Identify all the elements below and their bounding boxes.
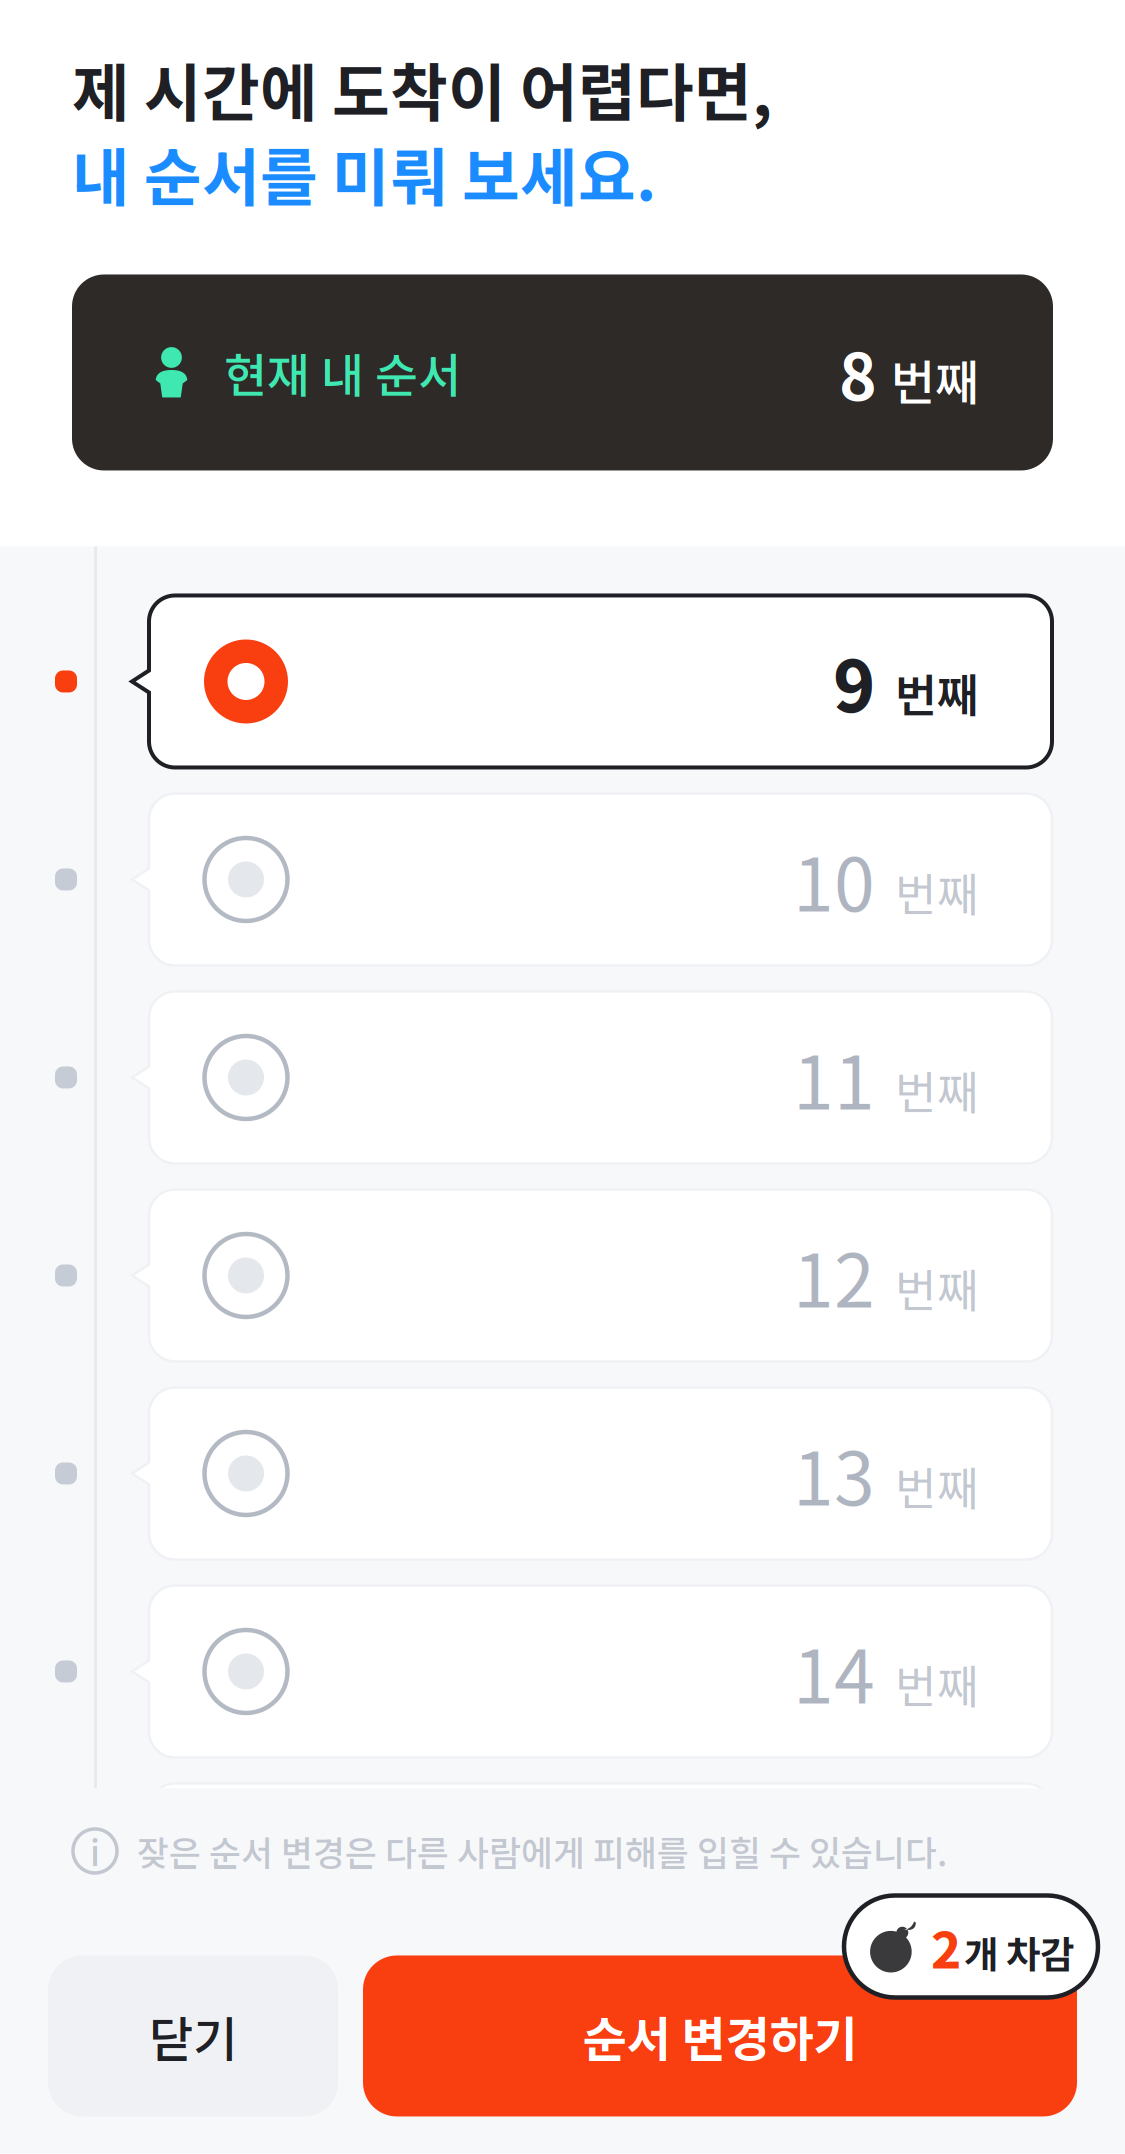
staticText: 번째 — [891, 345, 979, 414]
staticText: 번째 — [895, 1651, 979, 1716]
button[interactable]: 12 — [0, 1189, 1052, 1361]
staticText: 잦은 순서 변경은 다른 사람에게 피해를 입힐 수 있습니다. — [137, 1826, 947, 1876]
staticText: 현재 내 순서 — [224, 339, 461, 406]
staticText: 12 — [793, 1222, 875, 1329]
staticText: 닫기 — [149, 2001, 237, 2071]
staticText: i — [90, 1826, 100, 1876]
staticText: 13 — [793, 1420, 875, 1527]
staticText: 번째 — [895, 1057, 979, 1122]
staticText: 번째 — [895, 1255, 979, 1320]
staticText: 8 — [839, 326, 877, 419]
staticText: 10 — [793, 826, 875, 933]
staticText: 내 순서를 미뤄 보세요. — [72, 128, 656, 218]
button[interactable]: 10 — [0, 793, 1052, 965]
staticText: 개 차감 — [964, 1925, 1074, 1979]
staticText: 번째 — [895, 660, 979, 725]
staticText: 순서 변경하기 — [582, 2001, 857, 2071]
button[interactable]: 13 — [0, 1387, 1052, 1559]
button[interactable]: 11 — [0, 991, 1052, 1163]
button[interactable]: 순서 변경하기 — [363, 1955, 1077, 2116]
staticText: 14 — [793, 1618, 875, 1725]
staticText: 9 — [833, 630, 875, 733]
staticText: 15 — [793, 1816, 875, 1923]
staticText: 제 시간에 도착이 어렵다면, — [72, 43, 772, 134]
button[interactable]: 15 — [0, 1783, 1052, 1955]
staticText: 번째 — [895, 859, 979, 924]
button[interactable]: 9 — [0, 595, 1052, 767]
staticText: 2 — [931, 1910, 961, 1983]
staticText: 번째 — [895, 1849, 979, 1914]
button[interactable]: 닫기 — [48, 1955, 338, 2116]
staticText: 번째 — [895, 1453, 979, 1518]
button[interactable]: 14 — [0, 1585, 1052, 1757]
staticText: 11 — [793, 1024, 875, 1131]
